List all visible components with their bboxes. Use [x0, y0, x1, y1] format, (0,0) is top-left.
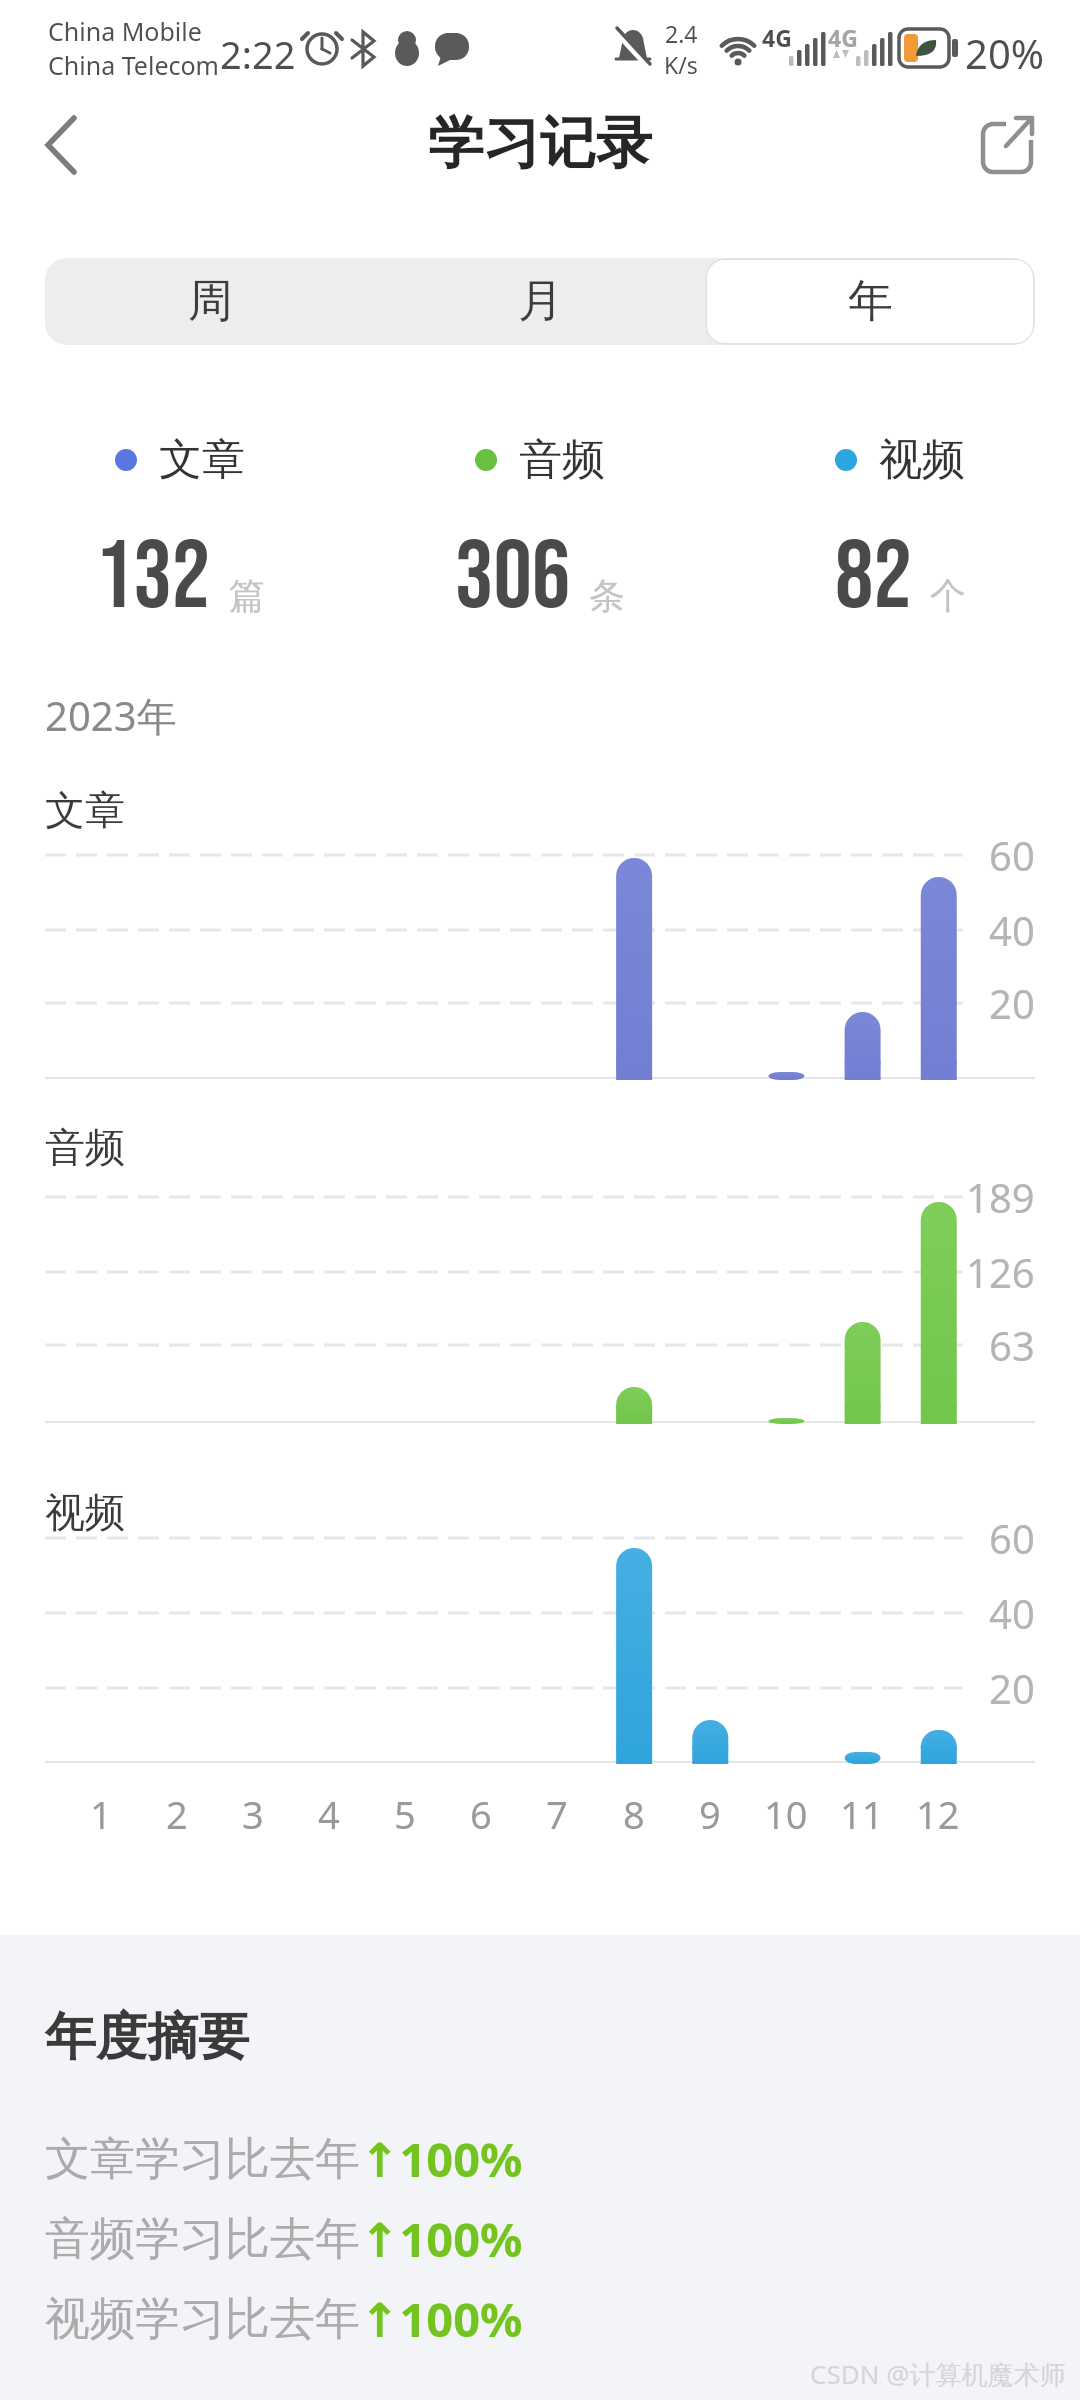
staticText: 音频	[519, 433, 605, 487]
staticText: ↑100%	[360, 2207, 523, 2271]
staticText: 11	[840, 1788, 884, 1840]
staticText: China Telecom	[48, 48, 219, 82]
staticText: 20%	[965, 26, 1044, 80]
staticText: 40	[989, 1586, 1035, 1640]
staticText: 10	[764, 1788, 808, 1840]
staticText: 4G	[762, 22, 792, 53]
staticText: 132	[95, 521, 211, 636]
staticText: 40	[989, 903, 1035, 957]
staticText: 周	[188, 273, 233, 330]
staticText: 2:22	[220, 28, 296, 80]
staticText: 60	[989, 828, 1035, 882]
staticText: 年度摘要	[45, 2005, 249, 2069]
staticText: 音频	[45, 1122, 125, 1172]
staticText: 文章	[45, 785, 125, 835]
staticText: 9	[699, 1788, 721, 1840]
button[interactable]	[30, 100, 100, 190]
staticText: 2	[166, 1788, 188, 1840]
staticText: 189	[966, 1170, 1035, 1224]
staticText: 5	[394, 1788, 416, 1840]
staticText: 视频	[45, 1487, 125, 1537]
staticText: 7	[546, 1788, 568, 1840]
staticText: 20	[989, 1661, 1035, 1715]
staticText: 20	[989, 976, 1035, 1030]
staticText: 文章	[159, 433, 245, 487]
staticText: CSDN @计算机魔术师	[810, 2356, 1066, 2392]
staticText: 6	[470, 1788, 492, 1840]
button[interactable]: 周	[45, 258, 375, 345]
button[interactable]: 年	[705, 258, 1035, 345]
staticText: 63	[989, 1318, 1035, 1372]
button[interactable]: 视频	[720, 430, 1080, 490]
staticText: ↑100%	[360, 2287, 523, 2351]
staticText: 82	[835, 521, 912, 636]
staticText: ↑100%	[360, 2127, 523, 2191]
staticText: 12	[916, 1788, 960, 1840]
staticText: 126	[966, 1245, 1035, 1299]
staticText: 学习记录	[428, 108, 652, 179]
staticText: 视频	[879, 433, 965, 487]
staticText: 文章学习比去年	[45, 2131, 360, 2188]
staticText: 4G	[828, 22, 858, 53]
staticText: 2023年	[45, 688, 177, 743]
staticText: K/s	[664, 49, 698, 80]
button[interactable]	[968, 104, 1058, 194]
staticText: 条	[589, 573, 625, 618]
staticText: 篇	[229, 573, 265, 618]
staticText: 8	[623, 1788, 645, 1840]
staticText: 年	[848, 273, 893, 330]
staticText: 306	[455, 521, 571, 636]
staticText: 4	[318, 1788, 340, 1840]
staticText: 1	[90, 1788, 112, 1840]
staticText: 60	[989, 1511, 1035, 1565]
button[interactable]: 音频	[360, 430, 720, 490]
staticText: 月	[518, 273, 563, 330]
staticText: 音频学习比去年	[45, 2211, 360, 2268]
staticText: 个	[930, 573, 966, 618]
staticText: 视频学习比去年	[45, 2291, 360, 2348]
button[interactable]: 文章	[0, 430, 360, 490]
staticText: 3	[242, 1788, 264, 1840]
staticText: 2.4	[665, 18, 698, 49]
staticText: China Mobile	[48, 14, 202, 48]
button[interactable]: 月	[375, 258, 705, 345]
